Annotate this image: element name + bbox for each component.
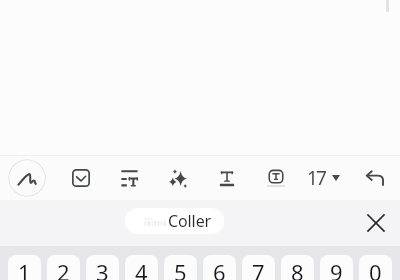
button[interactable]: 6 bbox=[203, 255, 236, 280]
staticText: 4 bbox=[135, 257, 148, 280]
staticText: 5 bbox=[174, 257, 187, 280]
button[interactable]: Text box bbox=[257, 159, 295, 197]
button[interactable]: Undo bbox=[355, 159, 393, 197]
staticText: Coller bbox=[168, 210, 212, 232]
button[interactable]: Close bbox=[362, 209, 390, 237]
button[interactable]: 0 bbox=[359, 255, 392, 280]
button[interactable]: Paragraph style bbox=[110, 159, 148, 197]
staticText: 1 bbox=[18, 257, 31, 280]
button[interactable]: 1 bbox=[8, 255, 41, 280]
staticText: 17 bbox=[307, 165, 326, 191]
button[interactable]: 17 bbox=[301, 159, 345, 197]
button[interactable]: 2 bbox=[47, 255, 80, 280]
button[interactable]: AI assist bbox=[159, 159, 197, 197]
button[interactable]: 7 bbox=[242, 255, 275, 280]
button[interactable]: Text format bbox=[208, 159, 246, 197]
staticText: 9 bbox=[330, 257, 343, 280]
button[interactable]: Checklist bbox=[62, 159, 100, 197]
button[interactable]: 5 bbox=[164, 255, 197, 280]
staticText: 3 bbox=[96, 257, 109, 280]
button[interactable]: 3 bbox=[86, 255, 119, 280]
button[interactable]: 9 bbox=[320, 255, 353, 280]
button[interactable]: 8 bbox=[281, 255, 314, 280]
staticText: 8 bbox=[291, 257, 304, 280]
staticText: 2 bbox=[57, 257, 70, 280]
button[interactable]: Handwriting bbox=[8, 159, 46, 197]
button[interactable]: Coller bbox=[125, 208, 224, 234]
staticText: 7 bbox=[252, 257, 265, 280]
staticText: 6 bbox=[213, 257, 226, 280]
button[interactable]: 4 bbox=[125, 255, 158, 280]
staticText: 0 bbox=[369, 257, 382, 280]
